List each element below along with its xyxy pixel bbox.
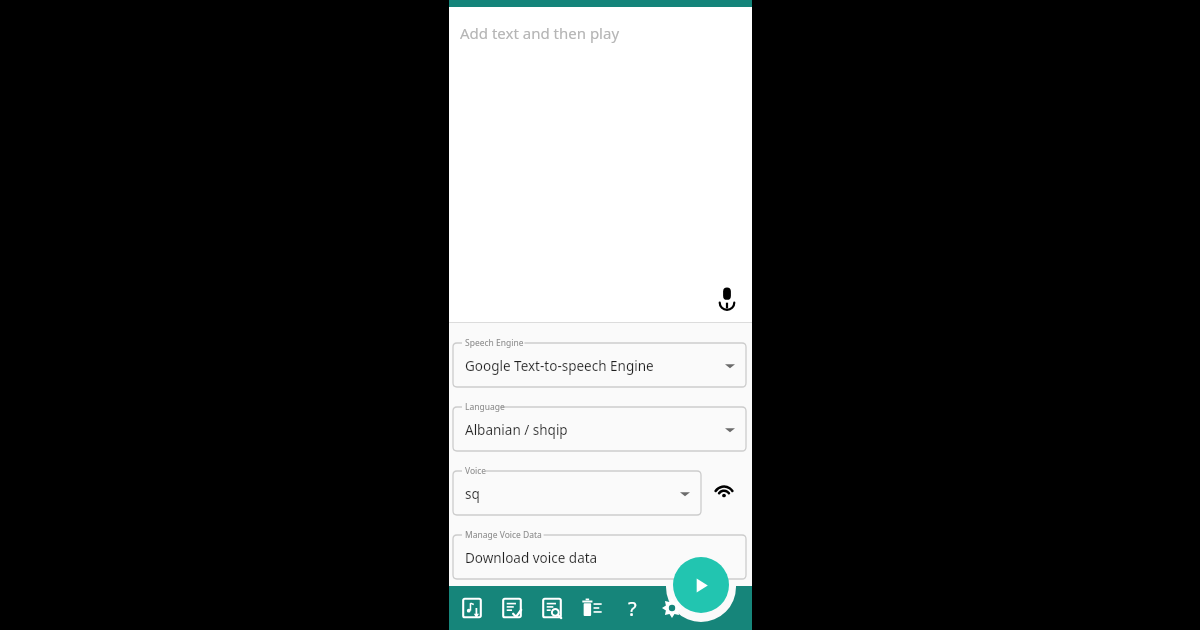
button[interactable]: Voice input	[711, 282, 743, 314]
button[interactable]: Network voice	[709, 475, 739, 505]
staticText: Voice	[465, 465, 487, 477]
staticText: Speech Engine	[465, 337, 524, 349]
button[interactable]: Language	[452, 400, 747, 452]
staticText: Manage Voice Data	[465, 529, 542, 541]
staticText: Add text and then play	[460, 23, 620, 43]
button[interactable]: Settings	[658, 594, 686, 622]
button[interactable]: Search text	[538, 594, 566, 622]
staticText: Google Text-to-speech Engine	[465, 357, 654, 375]
button[interactable]: Manage Voice Data	[452, 528, 747, 580]
button[interactable]: Saved texts	[498, 594, 526, 622]
button[interactable]: Clear text	[578, 594, 606, 622]
staticText: Download voice data	[465, 549, 598, 567]
button[interactable]: Voice	[452, 464, 702, 516]
button[interactable]: Save audio file	[458, 594, 486, 622]
staticText: ?	[628, 595, 637, 622]
staticText: Language	[465, 401, 505, 413]
button[interactable]: Play	[673, 557, 729, 613]
staticText: Albanian / shqip	[465, 421, 568, 439]
button[interactable]: Speech Engine	[452, 336, 747, 388]
staticText: sq	[465, 485, 480, 503]
button[interactable]: Help	[618, 594, 646, 622]
button[interactable]: Add text and then play	[449, 7, 752, 322]
